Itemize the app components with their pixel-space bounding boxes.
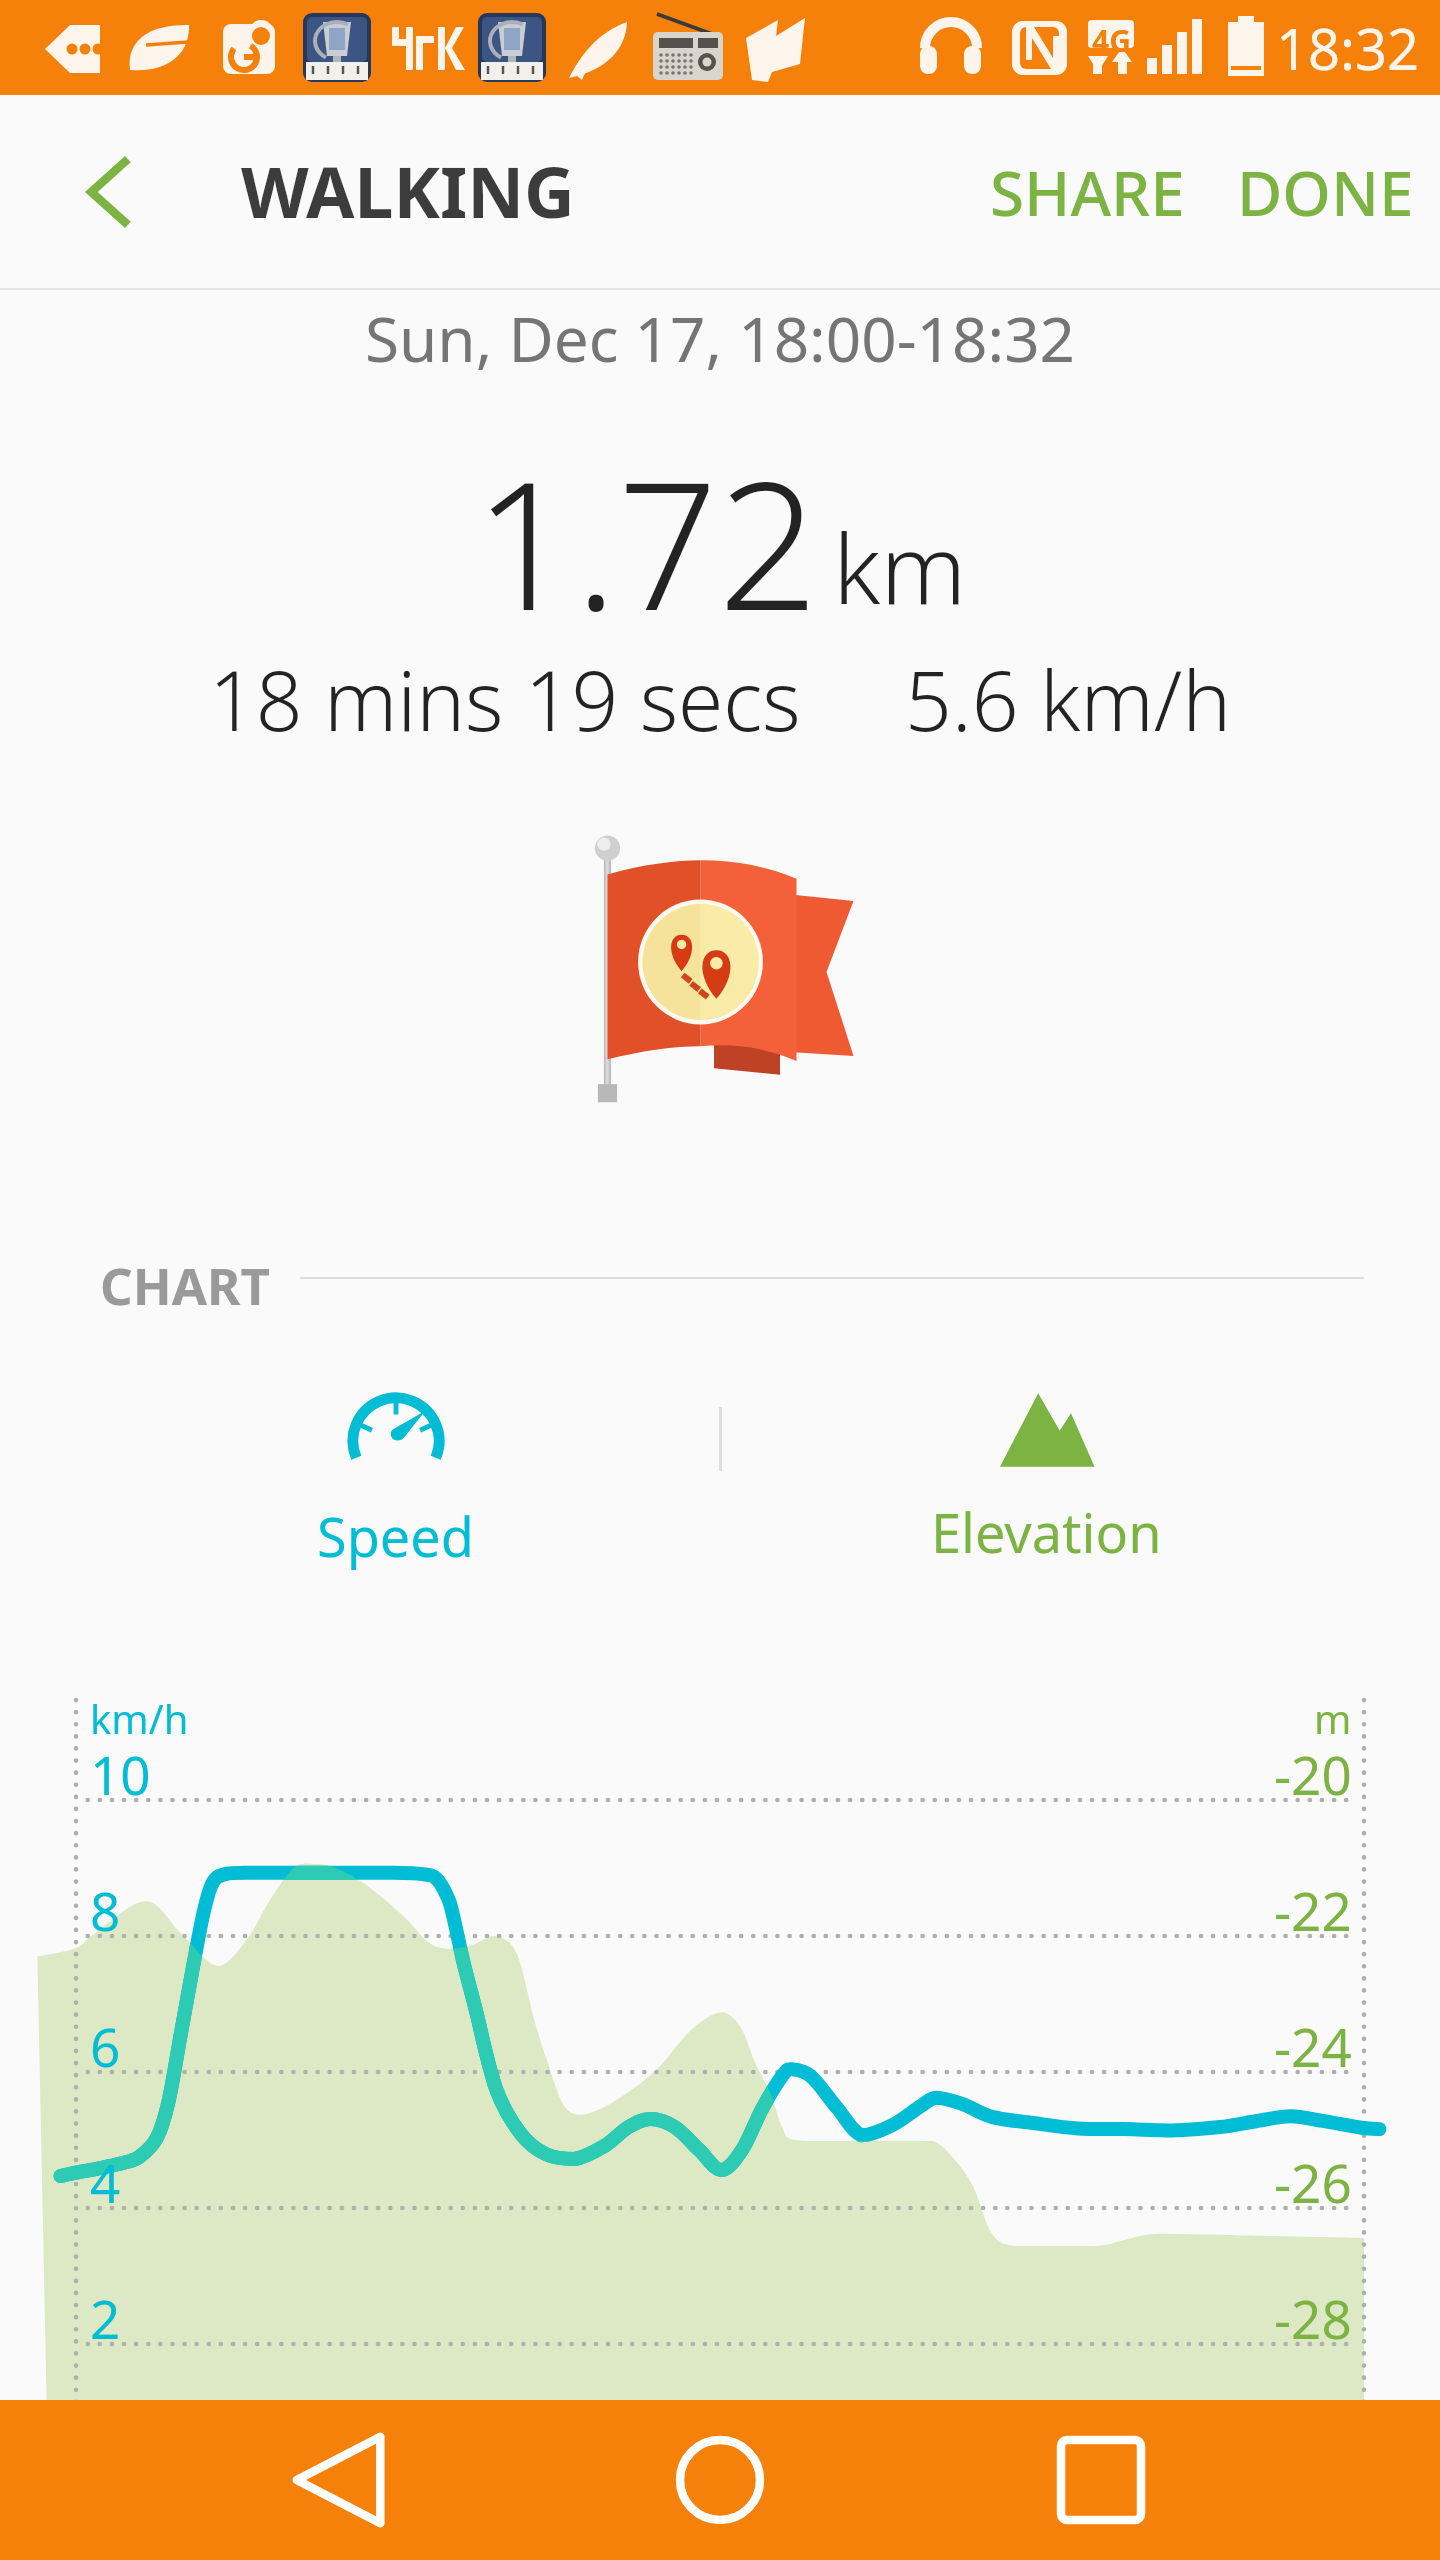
button[interactable]: Back — [0, 95, 216, 288]
staticText: 18 mins 19 secs — [209, 643, 801, 755]
staticText: -26 — [1274, 2146, 1352, 2218]
button[interactable]: Back — [230, 2400, 450, 2560]
staticText: -20 — [1274, 1738, 1352, 1810]
button[interactable]: Home — [610, 2400, 830, 2560]
staticText: 1.72 — [474, 422, 819, 662]
staticText: -24 — [1274, 2010, 1352, 2082]
staticText: 2 — [90, 2282, 121, 2354]
staticText: -22 — [1274, 1874, 1352, 1946]
staticText: Elevation — [931, 1495, 1162, 1569]
button[interactable]: SHARE — [972, 124, 1203, 260]
staticText: Sun, Dec 17, 18:00-18:32 — [365, 296, 1076, 380]
staticText: DONE — [1237, 150, 1414, 234]
staticText: CHART — [100, 1250, 270, 1306]
staticText: SHARE — [990, 150, 1185, 234]
staticText: WALKING — [241, 143, 575, 238]
staticText: km — [833, 501, 967, 632]
button[interactable]: Elevation — [826, 1375, 1266, 1605]
staticText: 8 — [90, 1874, 121, 1946]
staticText: 5.6 km/h — [905, 643, 1231, 755]
button[interactable]: Speed — [175, 1375, 615, 1605]
staticText: 6 — [90, 2010, 121, 2082]
staticText: 4G — [1092, 20, 1131, 61]
staticText: 18:32 — [1276, 10, 1420, 86]
staticText: 10 — [90, 1738, 151, 1810]
staticText: m — [1314, 1691, 1352, 1745]
staticText: -28 — [1274, 2282, 1352, 2354]
staticText: Speed — [317, 1499, 474, 1573]
button[interactable]: Recent apps — [991, 2400, 1211, 2560]
staticText: 4 — [90, 2146, 121, 2218]
button[interactable]: DONE — [1203, 124, 1440, 260]
staticText: km/h — [90, 1691, 189, 1745]
